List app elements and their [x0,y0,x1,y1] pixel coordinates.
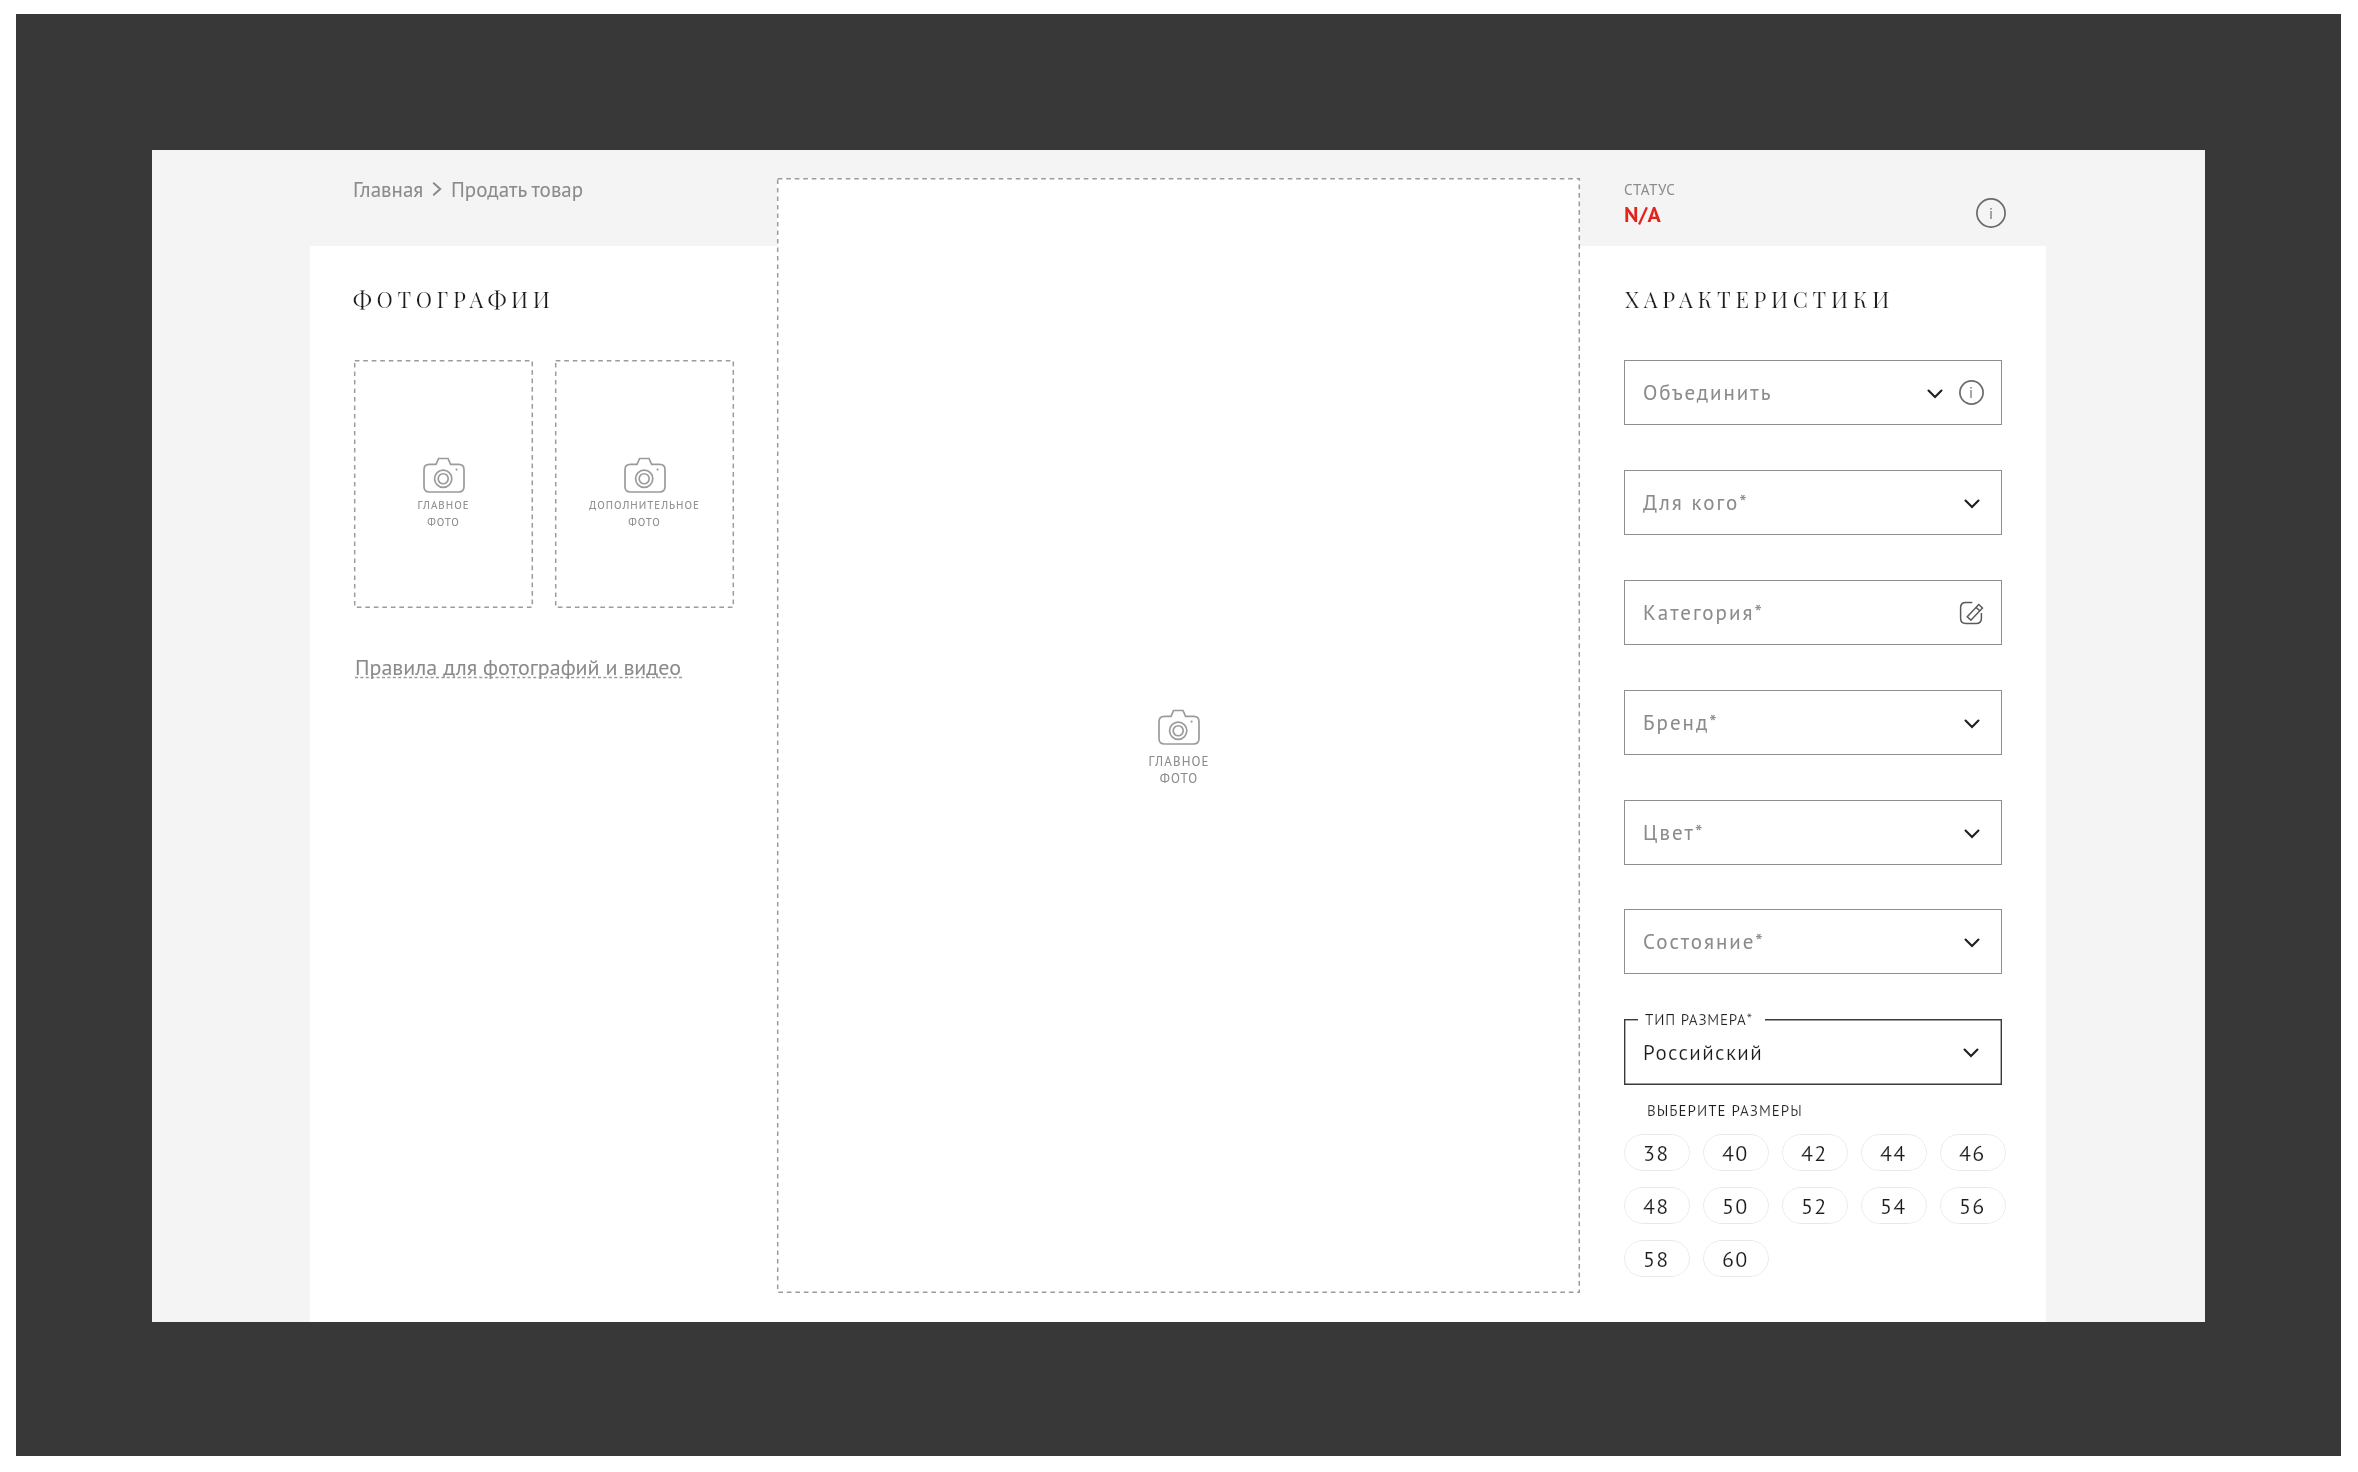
staticText: 58 [1643,1245,1670,1273]
button[interactable]: Добавить фото [354,360,533,608]
button[interactable]: 50 [1703,1187,1769,1224]
button[interactable]: 44 [1861,1134,1927,1171]
staticText: 38 [1643,1139,1670,1167]
button[interactable]: Бренд* [1624,690,2002,755]
staticText: Продать товар [451,176,584,203]
staticText: N/A [1624,200,1661,228]
staticText: 60 [1722,1245,1749,1273]
button[interactable]: Объединить [1624,360,2002,425]
button[interactable]: 38 [1624,1134,1690,1171]
staticText: i [1989,204,1994,223]
button[interactable]: 52 [1782,1187,1848,1224]
button[interactable]: Для кого* [1624,470,2002,535]
staticText: i [1969,383,1974,402]
staticText: ГЛАВНОЕ ФОТО [417,498,470,529]
button[interactable]: 54 [1861,1187,1927,1224]
staticText: Бренд* [1643,709,1719,736]
staticText: Объединить [1643,379,1773,406]
staticText: ХАРАКТЕРИСТИКИ [1625,284,1895,313]
button[interactable]: 48 [1624,1187,1690,1224]
staticText: Категория* [1643,599,1764,626]
button[interactable]: 56 [1940,1187,2006,1224]
button[interactable]: Главная [353,172,584,206]
staticText: 46 [1959,1139,1986,1167]
staticText: СТАТУС [1624,180,1676,199]
staticText: 50 [1722,1192,1749,1220]
staticText: ГЛАВНОЕ ФОТО [1148,753,1210,787]
button[interactable]: ТИП РАЗМЕРА* [1624,1019,2002,1085]
staticText: ДОПОЛНИТЕЛЬНОЕ ФОТО [589,498,700,529]
button[interactable]: Добавить фото [555,360,734,608]
staticText: Главная [353,176,424,203]
staticText: 48 [1643,1192,1670,1220]
button[interactable]: 46 [1940,1134,2006,1171]
staticText: Цвет* [1643,819,1705,846]
button[interactable]: Правила для фотографий и видео [355,648,685,684]
staticText: Правила для фотографий и видео [355,653,681,681]
staticText: Состояние* [1643,928,1765,955]
button[interactable]: Состояние* [1624,909,2002,974]
button[interactable]: 40 [1703,1134,1769,1171]
staticText: ТИП РАЗМЕРА* [1645,1010,1753,1029]
button[interactable]: Информация о статусе [1974,196,2008,230]
staticText: 40 [1722,1139,1749,1167]
button[interactable]: 42 [1782,1134,1848,1171]
staticText: 54 [1880,1192,1907,1220]
button[interactable]: Категория* [1624,580,2002,645]
staticText: 44 [1880,1139,1907,1167]
button[interactable]: Цвет* [1624,800,2002,865]
button[interactable]: Загрузить главное фото [777,178,1580,1293]
staticText: 52 [1801,1192,1828,1220]
staticText: Для кого* [1643,489,1749,516]
staticText: Российский [1643,1039,1764,1066]
button[interactable]: 60 [1703,1240,1769,1277]
staticText: ФОТОГРАФИИ [353,284,555,313]
button[interactable]: 58 [1624,1240,1690,1277]
staticText: ВЫБЕРИТЕ РАЗМЕРЫ [1647,1101,1803,1120]
staticText: 56 [1959,1192,1986,1220]
staticText: 42 [1801,1139,1828,1167]
